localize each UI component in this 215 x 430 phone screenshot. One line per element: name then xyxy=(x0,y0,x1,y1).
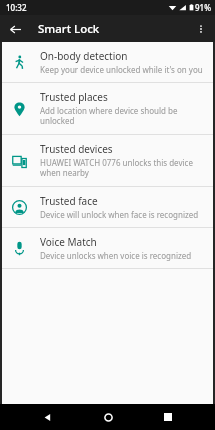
staticText: Device unlocks when voice is recognized xyxy=(40,250,192,261)
staticText: Trusted devices xyxy=(40,142,113,156)
staticText: Voice Match xyxy=(40,235,97,249)
button[interactable]: Trusted places xyxy=(2,83,213,134)
staticText: 91% xyxy=(195,2,211,13)
button[interactable]: Voice Match xyxy=(2,228,213,268)
button[interactable]: Home xyxy=(95,404,121,430)
button[interactable]: More options xyxy=(189,17,213,41)
staticText: Add location where device should be unlo… xyxy=(40,105,205,127)
staticText: Trusted places xyxy=(40,90,108,104)
staticText: Device will unlock when face is recogniz… xyxy=(40,209,199,220)
button[interactable]: On-body detection xyxy=(2,42,213,82)
staticText: On-body detection xyxy=(40,49,128,63)
button[interactable]: Recent apps xyxy=(155,404,181,430)
staticText: Smart Lock xyxy=(38,21,100,37)
staticText: Keep your device unlocked while it's on … xyxy=(40,64,203,75)
button[interactable]: Trusted devices xyxy=(2,135,213,186)
button[interactable]: Back xyxy=(34,404,60,430)
staticText: HUAWEI WATCH 0776 unlocks this device wh… xyxy=(40,157,205,179)
staticText: Trusted face xyxy=(40,194,98,208)
button[interactable]: Back xyxy=(3,17,27,41)
button[interactable]: Trusted face xyxy=(2,187,213,227)
staticText: 10:32 xyxy=(6,2,27,13)
